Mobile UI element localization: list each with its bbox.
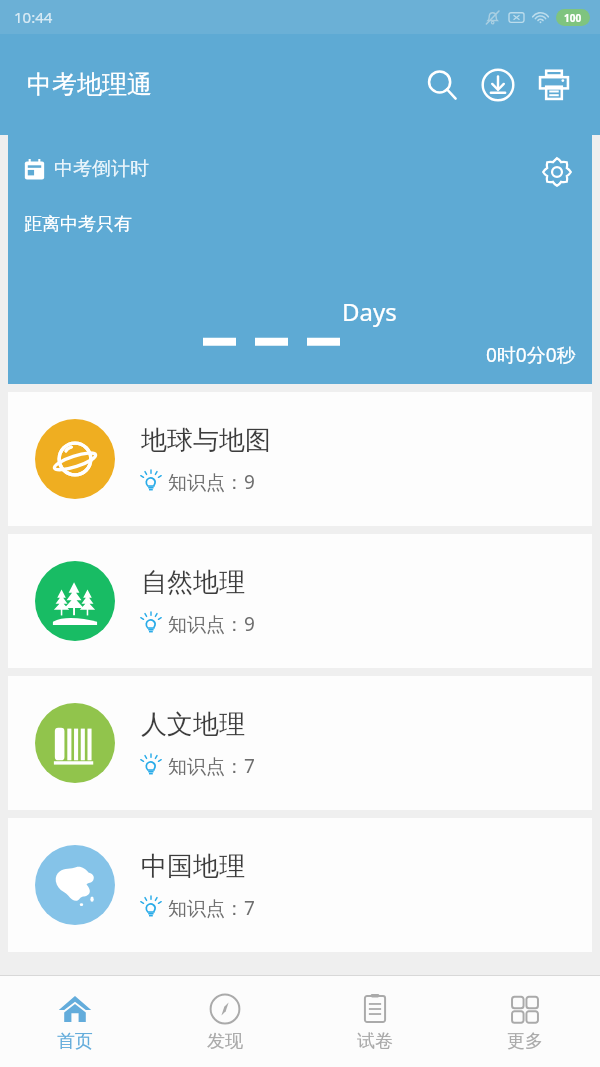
button[interactable]: 地球与地图	[8, 392, 592, 526]
button[interactable]: 更多	[450, 976, 600, 1067]
staticText: 中国地理	[141, 850, 245, 883]
button[interactable]: 人文地理	[8, 676, 592, 810]
button[interactable]: 自然地理	[8, 534, 592, 668]
button[interactable]: Download	[470, 57, 526, 113]
button[interactable]: 首页	[0, 976, 150, 1067]
staticText: 地球与地图	[141, 424, 271, 457]
staticText: 发现	[207, 1030, 243, 1053]
button[interactable]: Print	[526, 57, 582, 113]
staticText: 人文地理	[141, 708, 245, 741]
staticText: 自然地理	[141, 566, 245, 599]
staticText: 距离中考只有	[24, 213, 132, 236]
button[interactable]: 试卷	[300, 976, 450, 1067]
staticText: 知识点：9	[168, 611, 255, 637]
staticText: 10:44	[14, 7, 53, 27]
button[interactable]: 中考倒计时	[8, 135, 592, 384]
button[interactable]: 发现	[150, 976, 300, 1067]
staticText: 知识点：7	[168, 753, 255, 779]
staticText: 中考地理通	[27, 69, 152, 100]
staticText: 100	[564, 11, 582, 25]
staticText: 中考倒计时	[54, 157, 149, 181]
staticText: 首页	[57, 1030, 93, 1053]
button[interactable]: Settings	[534, 149, 580, 195]
staticText: 0时0分0秒	[486, 342, 576, 368]
staticText: 知识点：7	[168, 895, 255, 921]
staticText: 试卷	[357, 1030, 393, 1053]
staticText: 知识点：9	[168, 469, 255, 495]
button[interactable]: 中国地理	[8, 818, 592, 952]
staticText: 更多	[507, 1030, 543, 1053]
staticText: Days	[342, 295, 397, 328]
button[interactable]: Search	[414, 57, 470, 113]
